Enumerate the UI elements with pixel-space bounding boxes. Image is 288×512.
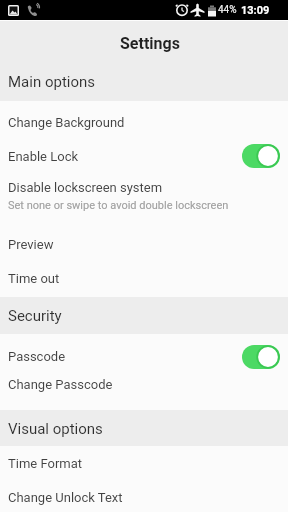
staticText: Main options [8,73,96,91]
staticText: Change Passcode [8,377,113,392]
button[interactable]: Visual options [0,413,288,445]
button[interactable]: Time out [0,262,288,294]
staticText: Set none or swipe to avoid double locksc… [8,199,229,212]
button[interactable]: Passcode [0,340,288,372]
button[interactable] [242,345,280,369]
staticText: Settings [120,34,180,53]
button[interactable]: Security [0,300,288,332]
button[interactable]: Time Format [0,447,288,479]
staticText: Change Unlock Text [8,490,123,505]
staticText: Passcode [8,349,66,364]
button[interactable]: Change Passcode [0,368,288,400]
button[interactable]: Disable lockscreen system [0,174,288,218]
staticText: 44% [218,4,237,16]
staticText: 13:09 [241,4,270,17]
button[interactable]: Change Background [0,106,288,138]
staticText: Change Background [8,115,125,130]
button[interactable]: Main options [0,66,288,98]
staticText: Disable lockscreen system [8,180,163,195]
staticText: Enable Lock [8,149,79,164]
staticText: Time Format [8,456,83,471]
staticText: Preview [8,237,54,252]
button[interactable]: Preview [0,228,288,260]
staticText: Visual options [8,420,103,438]
staticText: Time out [8,271,60,286]
button[interactable]: Change Unlock Text [0,481,288,512]
button[interactable]: Enable Lock [0,140,288,172]
button[interactable] [242,144,280,168]
staticText: Security [8,307,62,325]
